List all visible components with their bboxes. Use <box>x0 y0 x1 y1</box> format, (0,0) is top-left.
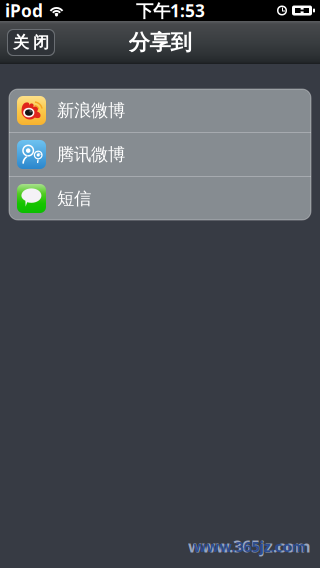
staticText: www.365jz.com <box>193 537 305 556</box>
staticText: 腾讯微博 <box>57 144 125 165</box>
staticText: iPod <box>5 0 43 22</box>
button[interactable]: 关 <box>7 29 55 56</box>
staticText: 分享到 <box>128 29 191 56</box>
staticText: 新浪微博 <box>57 100 125 121</box>
button[interactable]: 新浪微博 <box>9 89 311 132</box>
button[interactable]: 腾讯微博 <box>9 133 311 176</box>
staticText: www.365jz.com <box>188 536 311 557</box>
button[interactable]: 短信 <box>9 177 311 220</box>
staticText: 短信 <box>57 188 91 209</box>
staticText: 闭 <box>33 33 49 52</box>
staticText: 下午1:53 <box>136 0 205 22</box>
staticText: 关 <box>13 33 29 52</box>
